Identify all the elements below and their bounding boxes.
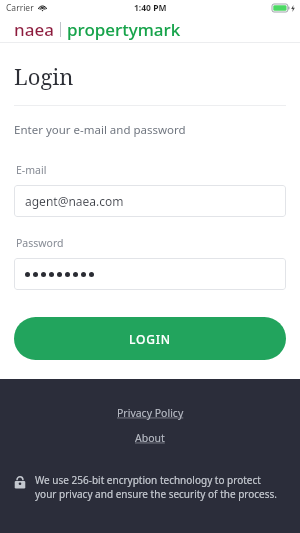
staticText: We use 256-bit encryption technology to … xyxy=(35,473,282,501)
staticText: Privacy Policy xyxy=(117,406,184,420)
staticText: propertymark xyxy=(67,18,181,41)
button[interactable]: Privacy Policy xyxy=(111,404,190,422)
staticText: Carrier xyxy=(6,2,34,14)
button[interactable]: About xyxy=(129,429,171,447)
staticText: E-mail xyxy=(16,163,47,177)
button[interactable]: LOGIN xyxy=(14,317,286,360)
staticText: Login xyxy=(14,61,74,91)
staticText: LOGIN xyxy=(129,331,171,347)
staticText: naea xyxy=(14,18,54,41)
button[interactable]: agent@naea.com xyxy=(14,185,286,217)
button[interactable] xyxy=(14,258,286,290)
staticText: Password xyxy=(16,236,64,250)
other: Secure encryption xyxy=(14,475,26,489)
staticText: 1:40 PM xyxy=(134,2,167,14)
staticText: About xyxy=(135,431,165,445)
staticText: agent@naea.com xyxy=(25,193,124,209)
staticText: Enter your e-mail and password xyxy=(14,122,186,138)
